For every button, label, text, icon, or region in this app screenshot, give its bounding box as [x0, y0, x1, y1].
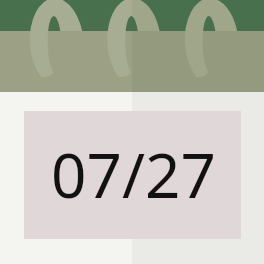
staticText: 07/27 [51, 132, 216, 216]
button[interactable]: Calendar, 07/27 [0, 0, 264, 264]
